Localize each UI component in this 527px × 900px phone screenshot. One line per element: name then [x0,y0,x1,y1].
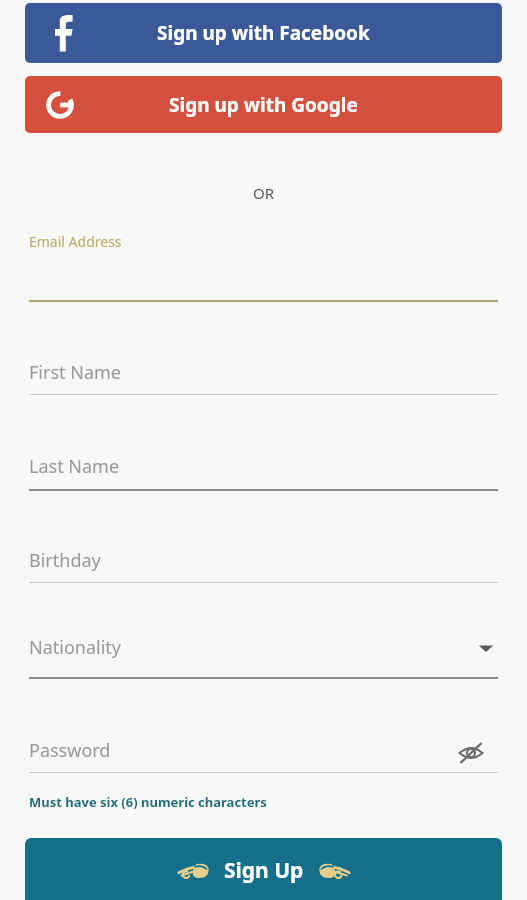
staticText: Sign Up [224,856,304,885]
staticText: Sign up with Google [169,92,358,118]
button[interactable]: Sign up with Facebook [25,3,502,63]
button[interactable] [25,432,502,497]
staticText: Last Name [29,454,120,479]
button[interactable]: Select nationality [470,632,502,664]
button[interactable]: Sign up with Google [25,76,502,133]
button[interactable] [25,716,502,780]
staticText: OR [0,183,527,203]
staticText: Birthday [29,548,101,573]
staticText: Nationality [29,635,121,660]
staticText: Email Address [29,232,122,251]
staticText: Must have six (6) numeric characters [29,793,267,811]
button[interactable] [25,613,502,685]
staticText: First Name [29,360,121,385]
staticText: Password [29,738,111,763]
button[interactable]: Sign Up [25,838,502,900]
button[interactable] [25,526,502,590]
button[interactable]: Show password [450,732,492,774]
button[interactable] [25,338,502,402]
staticText: Sign up with Facebook [157,20,370,46]
